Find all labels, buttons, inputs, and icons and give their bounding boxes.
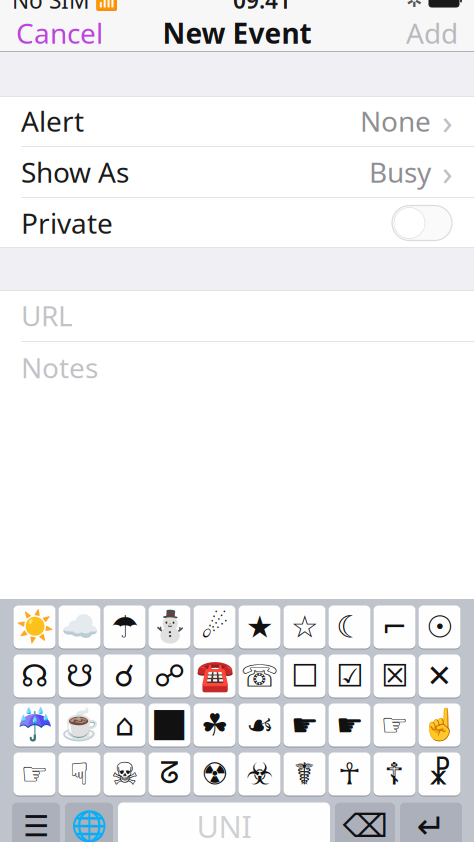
button[interactable]: Symbol key — [373, 653, 415, 698]
button[interactable]: Symbol key — [328, 653, 370, 698]
button[interactable]: Symbol key — [418, 653, 460, 698]
staticText: ⌂ — [115, 708, 134, 742]
staticText: ☔️ — [15, 707, 53, 742]
staticText: ☂ — [111, 610, 138, 644]
button[interactable]: Symbol key — [328, 702, 370, 747]
staticText: URL — [21, 297, 73, 334]
staticText: New Event — [162, 14, 311, 52]
button[interactable]: Symbol key — [283, 702, 325, 747]
staticText: ☤ — [294, 757, 315, 791]
staticText: ☎️ — [195, 658, 233, 693]
staticText: ☘ — [201, 708, 228, 742]
staticText: ☁️ — [60, 609, 98, 644]
button[interactable]: Keyboard layout — [12, 801, 60, 842]
staticText: ☰ — [23, 809, 49, 842]
button[interactable]: Symbol key — [13, 702, 55, 747]
button[interactable]: Symbol key — [103, 653, 145, 698]
button[interactable]: Symbol key — [193, 653, 235, 698]
button[interactable]: Symbol key — [283, 653, 325, 698]
button[interactable]: UNI — [118, 801, 330, 842]
staticText: ☥ — [338, 757, 361, 791]
staticText: No SIM — [12, 0, 90, 15]
staticText: ☆ — [291, 610, 318, 644]
staticText: ☠ — [111, 757, 138, 791]
staticText: UNI — [196, 806, 251, 842]
staticText: ☑ — [336, 659, 363, 693]
button[interactable]: Alert — [0, 96, 474, 146]
staticText: Notes — [21, 349, 98, 386]
staticText: ☦ — [384, 757, 404, 791]
button[interactable]: Symbol key — [148, 604, 190, 649]
button[interactable]: Private toggle — [391, 204, 453, 242]
button[interactable]: Symbol key — [13, 653, 55, 698]
button[interactable]: Symbol key — [238, 702, 280, 747]
staticText: ☊ — [21, 659, 48, 693]
staticText: ᘔ — [159, 759, 179, 789]
button[interactable]: Add — [390, 11, 474, 55]
button[interactable]: Symbol key — [103, 702, 145, 747]
button[interactable]: URL — [0, 290, 474, 341]
button[interactable]: Symbol key — [58, 653, 100, 698]
button[interactable]: Symbol key — [238, 751, 280, 796]
button[interactable]: Symbol key — [148, 702, 190, 747]
staticText: ⬛︎ — [154, 710, 185, 740]
button[interactable]: Symbol key — [13, 751, 55, 796]
staticText: ☋ — [66, 659, 93, 693]
button[interactable]: Symbol key — [193, 702, 235, 747]
button[interactable]: Symbol key — [328, 751, 370, 796]
staticText: ☄ — [201, 610, 228, 644]
button[interactable]: Symbol key — [103, 604, 145, 649]
staticText: ↵ — [416, 806, 445, 842]
staticText: › — [442, 98, 453, 144]
button[interactable]: Symbol key — [418, 751, 460, 796]
button[interactable]: Symbol key — [373, 751, 415, 796]
button[interactable]: Symbol key — [58, 702, 100, 747]
staticText: ☟ — [70, 757, 89, 791]
button[interactable]: Symbol key — [283, 604, 325, 649]
button[interactable]: Symbol key — [238, 604, 280, 649]
button[interactable]: Symbol key — [418, 702, 460, 747]
button[interactable]: Symbol key — [193, 604, 235, 649]
staticText: None — [360, 102, 431, 140]
staticText: Private — [21, 204, 113, 242]
button[interactable]: Symbol key — [418, 604, 460, 649]
staticText: ☢ — [201, 757, 228, 791]
staticText: ☾ — [336, 610, 363, 644]
staticText: Busy — [369, 153, 431, 191]
button[interactable]: Symbol key — [148, 653, 190, 698]
staticText: Cancel — [16, 14, 103, 52]
button[interactable]: Symbol key — [103, 751, 145, 796]
button[interactable]: Symbol key — [328, 604, 370, 649]
button[interactable]: Symbol key — [283, 751, 325, 796]
button[interactable]: Symbol key — [13, 604, 55, 649]
staticText: ☛ — [336, 708, 363, 742]
staticText: ☌ — [114, 659, 135, 693]
staticText: Add — [406, 14, 458, 52]
staticText: ☀️ — [15, 609, 53, 644]
staticText: ☙ — [246, 708, 273, 742]
staticText: ☛ — [291, 708, 318, 742]
staticText: 📶 — [90, 0, 118, 12]
button[interactable]: Cancel — [0, 11, 119, 55]
staticText: ☕️ — [60, 707, 98, 742]
staticText: Alert — [21, 102, 84, 140]
button[interactable]: Notes — [0, 342, 474, 393]
button[interactable]: Return — [400, 801, 462, 842]
staticText: ★ — [246, 610, 273, 644]
staticText: ☞ — [381, 708, 408, 742]
staticText: ☝️ — [420, 707, 458, 742]
button[interactable]: Symbol key — [58, 604, 100, 649]
staticText: 🌐 — [70, 809, 107, 842]
button[interactable]: Show As — [0, 147, 474, 197]
button[interactable]: Symbol key — [58, 751, 100, 796]
button[interactable]: Next keyboard — [65, 801, 113, 842]
staticText: 09:41 — [233, 0, 291, 15]
staticText: ⌐ — [381, 610, 407, 644]
button[interactable]: Delete — [335, 801, 395, 842]
button[interactable]: Symbol key — [238, 653, 280, 698]
button[interactable]: Symbol key — [373, 702, 415, 747]
button[interactable]: Symbol key — [373, 604, 415, 649]
staticText: ⌫ — [342, 808, 387, 842]
button[interactable]: Symbol key — [193, 751, 235, 796]
button[interactable]: Symbol key — [148, 751, 190, 796]
